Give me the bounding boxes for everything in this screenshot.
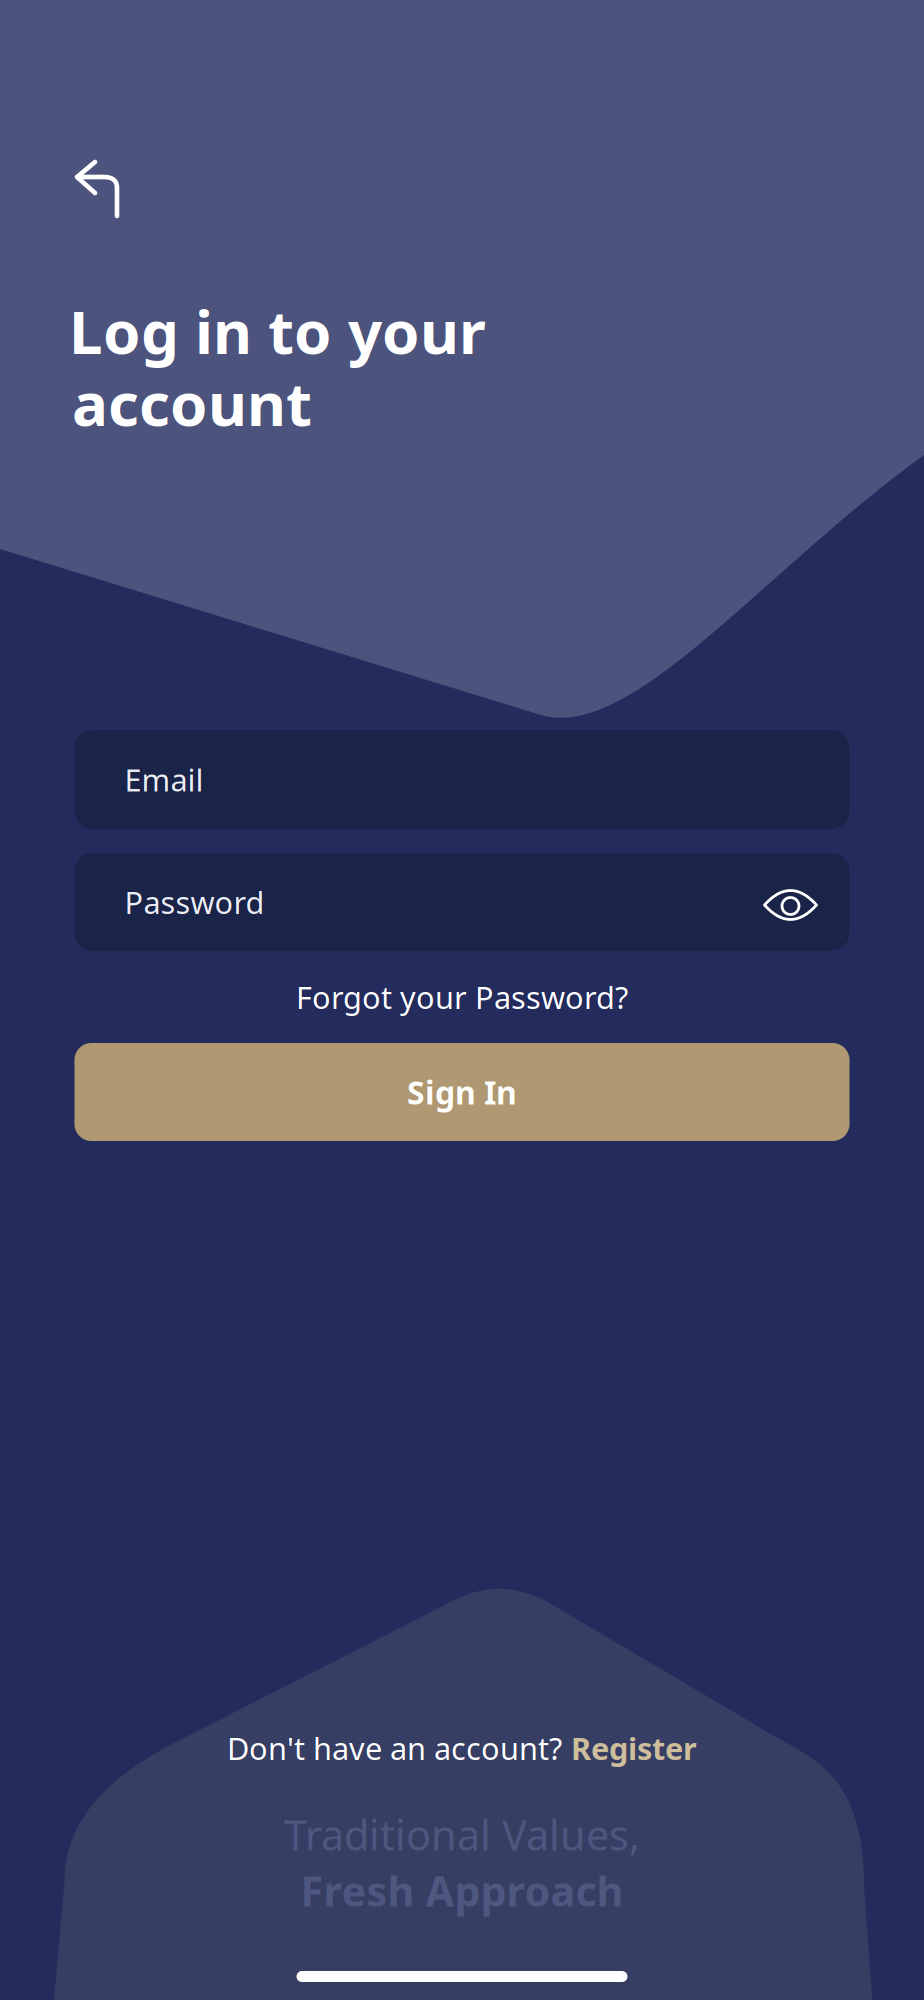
staticText: Forgot your Password? (296, 977, 628, 1017)
staticText: Log in to your (69, 291, 486, 371)
staticText: Register (571, 1728, 697, 1768)
staticText: Sign In (407, 1071, 517, 1113)
button[interactable]: Show password (762, 884, 818, 920)
staticText: Fresh Approach (300, 1863, 623, 1918)
staticText: Don't have an account? (227, 1728, 562, 1768)
button[interactable]: Forgot your Password? (74, 951, 849, 1043)
staticText: Email (124, 759, 203, 800)
staticText: Traditional Values, (284, 1807, 640, 1862)
button[interactable]: Back (58, 144, 140, 236)
staticText: Password (124, 882, 264, 922)
button[interactable]: Register (571, 1728, 697, 1768)
button[interactable]: Sign In (74, 1043, 849, 1141)
staticText: account (72, 363, 312, 443)
